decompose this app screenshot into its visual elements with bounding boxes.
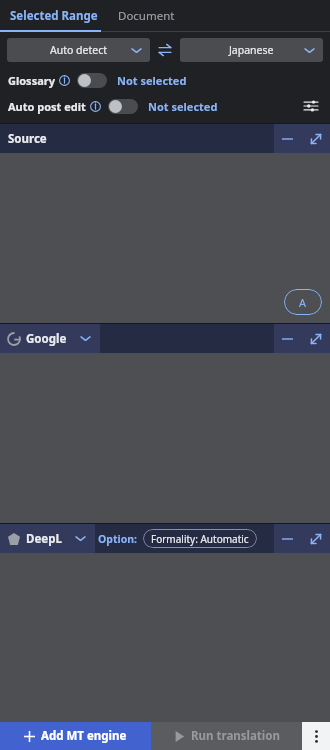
staticText: Glossary bbox=[8, 73, 55, 88]
staticText: Run translation bbox=[191, 728, 280, 744]
staticText: Add MT engine bbox=[41, 728, 127, 744]
staticText: DeepL bbox=[26, 531, 62, 547]
button[interactable]: Expand bbox=[301, 124, 330, 153]
staticText: Not selected bbox=[117, 73, 187, 88]
button[interactable]: Not selected bbox=[148, 99, 218, 114]
button[interactable]: Japanese bbox=[180, 38, 323, 62]
staticText: Source bbox=[8, 131, 47, 147]
button[interactable]: Add MT engine bbox=[0, 722, 151, 750]
staticText: Option: bbox=[98, 532, 137, 546]
button[interactable]: Minimize bbox=[274, 124, 301, 153]
button[interactable]: Minimize bbox=[274, 324, 301, 353]
button[interactable]: Google bbox=[0, 324, 100, 353]
button[interactable]: Run translation bbox=[151, 722, 302, 750]
button[interactable]: Selected Range bbox=[0, 0, 108, 32]
staticText: Selected Range bbox=[10, 8, 98, 24]
button[interactable]: DeepL bbox=[0, 524, 95, 553]
button[interactable]: Not selected bbox=[117, 73, 187, 88]
staticText: Auto detect bbox=[50, 43, 107, 57]
staticText: Japanese bbox=[229, 43, 274, 57]
button[interactable]: Expand bbox=[301, 524, 330, 553]
staticText: Auto post edit bbox=[8, 99, 86, 114]
staticText: Formality: Automatic bbox=[151, 532, 249, 546]
button[interactable]: Minimize bbox=[274, 524, 301, 553]
button[interactable]: Font settings bbox=[284, 289, 322, 315]
button[interactable]: Formality: Automatic bbox=[143, 529, 257, 548]
button[interactable]: Expand bbox=[301, 324, 330, 353]
button[interactable]: Toggle bbox=[108, 99, 138, 114]
button[interactable]: More options bbox=[302, 722, 330, 750]
staticText: Not selected bbox=[148, 99, 218, 114]
button[interactable]: Swap languages bbox=[150, 38, 180, 62]
button[interactable]: Auto detect bbox=[7, 38, 150, 62]
staticText: A bbox=[299, 295, 307, 310]
button[interactable]: Settings bbox=[300, 95, 322, 117]
staticText: Google bbox=[26, 331, 67, 347]
button[interactable]: Document bbox=[108, 0, 185, 32]
button[interactable]: Toggle bbox=[77, 73, 107, 88]
staticText: Document bbox=[118, 8, 175, 24]
